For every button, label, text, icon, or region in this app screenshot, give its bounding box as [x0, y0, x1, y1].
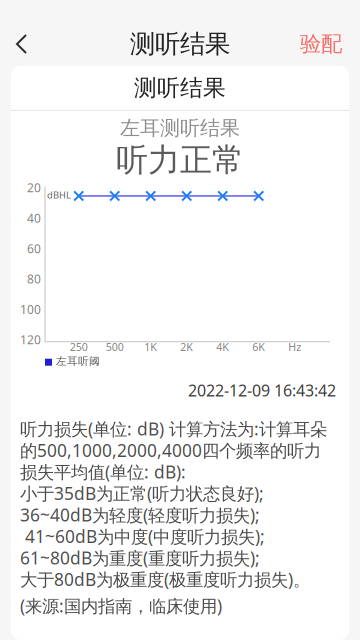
staticText: 2022-12-09 16:43:42 — [188, 380, 336, 401]
staticText: 41~60dB为中度(中度听力损失); — [20, 525, 265, 548]
staticText: 500 — [106, 340, 124, 354]
staticText: dBHL — [47, 189, 71, 201]
staticText: 1K — [144, 340, 157, 354]
staticText: 36~40dB为轻度(轻度听力损失); — [20, 503, 260, 526]
staticText: 测听结果 — [130, 28, 230, 59]
staticText: 2K — [180, 340, 193, 354]
staticText: 120 — [20, 332, 41, 348]
staticText: 20 — [27, 180, 41, 196]
staticText: 100 — [20, 301, 41, 317]
button[interactable]: 返回 — [0, 22, 46, 66]
staticText: 61~80dB为重度(重度听力损失); — [20, 546, 260, 569]
staticText: 6K — [252, 340, 265, 354]
staticText: 80 — [27, 271, 41, 287]
staticText: 40 — [27, 210, 41, 226]
staticText: Hz — [288, 340, 301, 354]
staticText: (来源:国内指南，临床使用) — [20, 594, 222, 617]
staticText: 左耳测听结果 — [120, 116, 240, 140]
staticText: 听力损失(单位: dB) 计算方法为:计算耳朵 — [20, 417, 327, 440]
staticText: 听力正常 — [116, 140, 244, 180]
staticText: 左耳听阈 — [56, 355, 100, 368]
staticText: 测听结果 — [134, 74, 226, 102]
staticText: 250 — [70, 340, 88, 354]
staticText: 验配 — [300, 31, 342, 57]
button[interactable]: 验配 — [286, 21, 360, 67]
staticText: 4K — [216, 340, 229, 354]
staticText: 大于80dB为极重度(极重度听力损失)。 — [20, 568, 310, 591]
staticText: 小于35dB为正常(听力状态良好); — [20, 482, 264, 505]
staticText: 60 — [27, 240, 41, 256]
staticText: 的500,1000,2000,4000四个频率的听力 — [20, 439, 321, 462]
staticText: 损失平均值(单位: dB): — [20, 460, 186, 483]
